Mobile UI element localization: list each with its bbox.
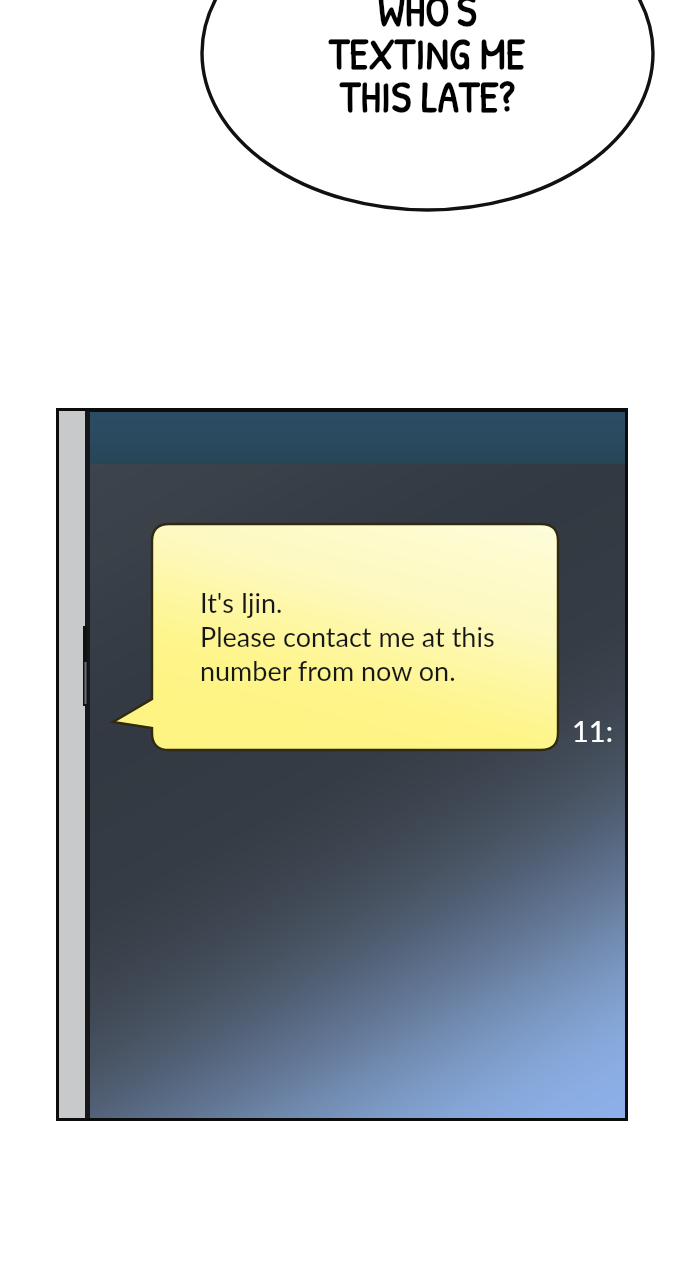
- button[interactable]: Message from Ijin: It's Ijin. Please con…: [152, 524, 558, 750]
- button[interactable]: Comic panel: phone screen at night: [56, 408, 628, 1121]
- button[interactable]: Thought balloon: Who's texting me this l…: [202, 0, 653, 211]
